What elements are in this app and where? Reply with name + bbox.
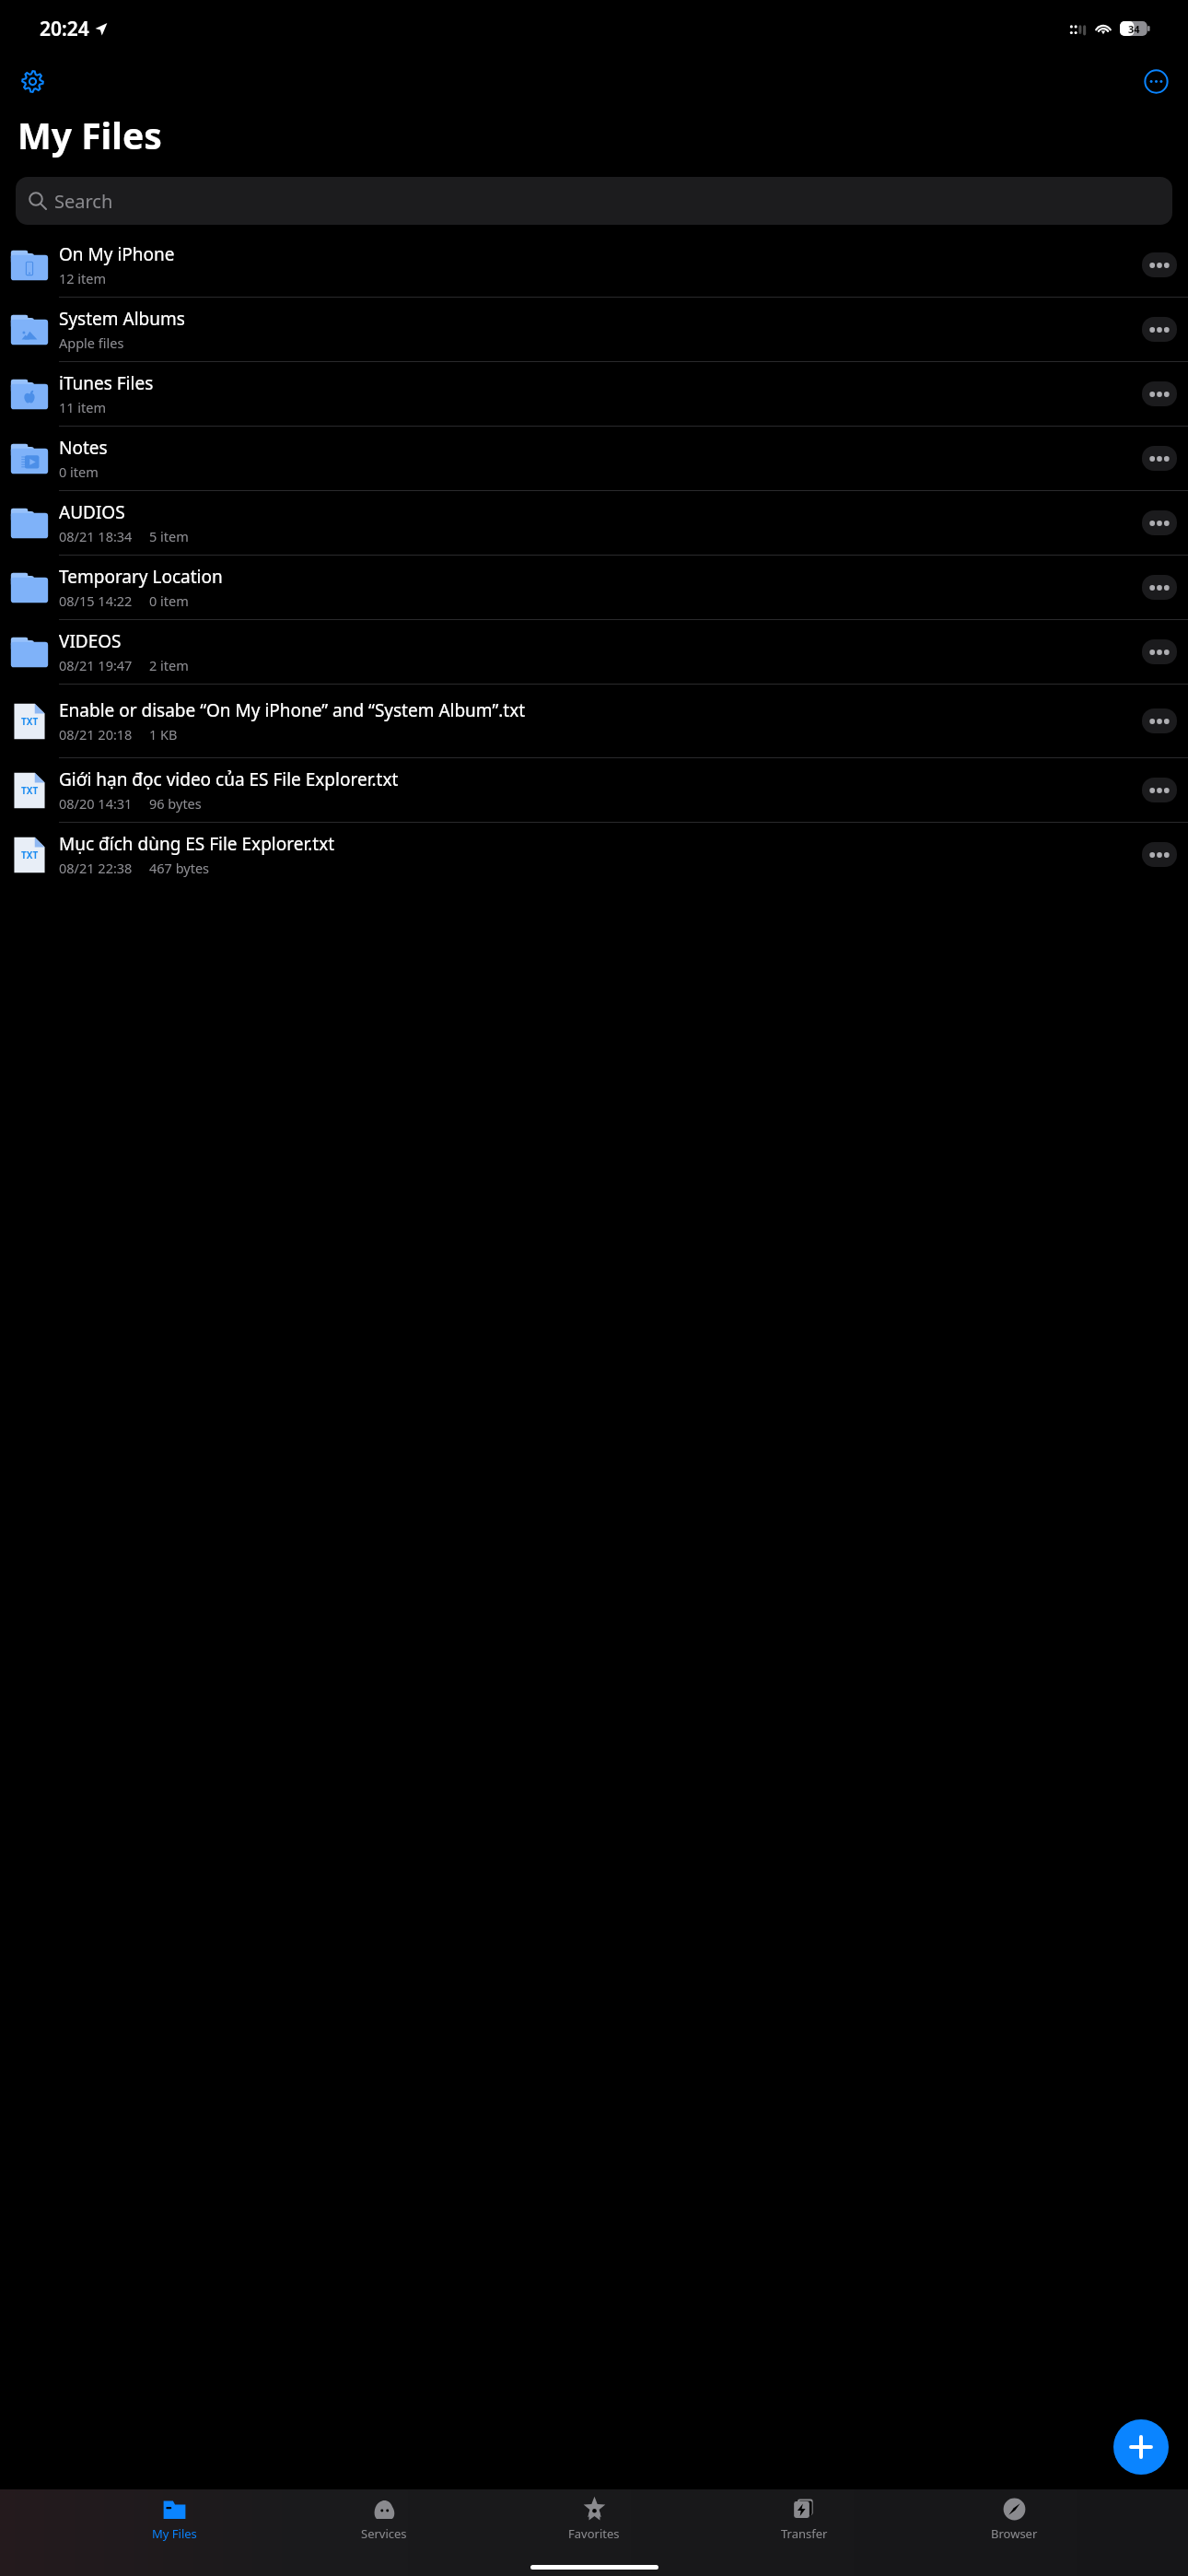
button[interactable]: TXT [0, 758, 1188, 822]
staticText: 96 bytes [149, 794, 202, 813]
staticText: Giới hạn đọc video của ES File Explorer.… [59, 767, 399, 791]
staticText: VIDEOS [59, 629, 122, 653]
button[interactable]: Browser [978, 2495, 1050, 2542]
button[interactable]: TXT [0, 823, 1188, 886]
button[interactable]: On My iPhone [0, 233, 1188, 297]
staticText: TXT [21, 715, 39, 728]
button[interactable]: Temporary Location [0, 556, 1188, 619]
staticText: 11 item [59, 398, 107, 416]
staticText: Apple files [59, 334, 124, 352]
staticText: iTunes Files [59, 371, 154, 395]
button[interactable]: AUDIOS [0, 491, 1188, 555]
staticText: 08/21 22:38 [59, 859, 133, 877]
staticText: Browser [991, 2525, 1038, 2542]
staticText: 08/20 14:31 [59, 794, 133, 813]
button[interactable]: Settings [12, 61, 52, 101]
staticText: 08/15 14:22 [59, 591, 133, 610]
button[interactable]: TXT [0, 685, 1188, 757]
staticText: System Albums [59, 307, 185, 331]
button[interactable]: More actions [1142, 317, 1177, 342]
button[interactable]: VIDEOS [0, 620, 1188, 684]
staticText: Services [361, 2525, 407, 2542]
staticText: 08/21 19:47 [59, 656, 133, 674]
staticText: 0 item [59, 463, 99, 481]
staticText: TXT [21, 849, 39, 861]
button[interactable]: More options [1136, 61, 1176, 101]
button[interactable]: More actions [1142, 446, 1177, 471]
button[interactable]: More actions [1142, 510, 1177, 535]
staticText: 5 item [149, 527, 189, 545]
button[interactable]: More actions [1142, 778, 1177, 802]
button[interactable]: Add [1113, 2419, 1169, 2475]
button[interactable]: iTunes Files [0, 362, 1188, 426]
button[interactable]: System Albums [0, 298, 1188, 361]
button[interactable]: More actions [1142, 252, 1177, 277]
staticText: Search [54, 189, 113, 214]
staticText: 20:24 [40, 16, 89, 42]
staticText: AUDIOS [59, 500, 125, 524]
staticText: 12 item [59, 269, 107, 287]
staticText: 0 item [149, 591, 189, 610]
button[interactable]: Search [16, 177, 1172, 225]
button[interactable]: Favorites [558, 2495, 630, 2542]
button[interactable]: Notes [0, 427, 1188, 490]
staticText: 467 bytes [149, 859, 210, 877]
button[interactable]: Services [348, 2495, 420, 2542]
staticText: Mục đích dùng ES File Explorer.txt [59, 832, 335, 856]
staticText: 1 KB [149, 725, 178, 744]
staticText: Favorites [568, 2525, 620, 2542]
staticText: On My iPhone [59, 242, 175, 266]
staticText: Transfer [781, 2525, 828, 2542]
staticText: Notes [59, 436, 108, 460]
staticText: 34 [1128, 22, 1140, 36]
staticText: My Files [17, 111, 162, 159]
staticText: 2 item [149, 656, 189, 674]
button[interactable]: More actions [1142, 381, 1177, 406]
staticText: TXT [21, 784, 39, 797]
button[interactable]: More actions [1142, 575, 1177, 600]
staticText: Enable or disabe “On My iPhone” and “Sys… [59, 698, 526, 722]
button[interactable]: My Files [138, 2495, 210, 2542]
staticText: My Files [152, 2525, 197, 2542]
button[interactable]: More actions [1142, 639, 1177, 664]
staticText: 08/21 20:18 [59, 725, 133, 744]
button[interactable]: More actions [1142, 708, 1177, 733]
button[interactable]: More actions [1142, 842, 1177, 867]
button[interactable]: Transfer [768, 2495, 840, 2542]
staticText: Temporary Location [59, 565, 223, 589]
staticText: 08/21 18:34 [59, 527, 133, 545]
